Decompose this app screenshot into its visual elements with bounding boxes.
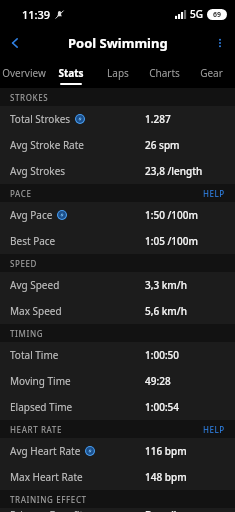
button[interactable]: Best Pace [0, 228, 235, 254]
staticText: Best Pace [10, 234, 56, 248]
staticText: TRAINING EFFECT [10, 494, 87, 505]
button[interactable]: Avg Pace [0, 202, 235, 228]
button[interactable]: Avg Speed [0, 272, 235, 298]
button[interactable]: Moving Time [0, 368, 235, 394]
staticText: Overview [2, 66, 46, 80]
staticText: Pool Swimming [68, 34, 168, 52]
button[interactable]: HELP [193, 420, 235, 438]
button[interactable]: Info [75, 114, 85, 124]
staticText: 1:00:50 [145, 348, 180, 362]
button[interactable]: Primary Benefit [0, 508, 235, 512]
staticText: Avg Heart Rate [10, 444, 81, 458]
staticText: Primary Benefit [10, 508, 84, 512]
staticText: Gear [200, 66, 223, 80]
staticText: 1:05 /100m [145, 234, 198, 248]
button[interactable]: More options [205, 28, 235, 58]
staticText: PACE [10, 188, 32, 199]
staticText: 3,3 km/h [145, 278, 187, 292]
staticText: Avg Stroke Rate [10, 138, 84, 152]
button[interactable]: Total Time [0, 342, 235, 368]
button[interactable]: Back [0, 28, 30, 58]
button[interactable]: Elapsed Time [0, 394, 235, 420]
staticText: 1:00:54 [145, 400, 180, 414]
staticText: 5,6 km/h [145, 304, 187, 318]
button[interactable]: Total Strokes [0, 106, 235, 132]
staticText: Max Speed [10, 304, 62, 318]
staticText: STROKES [10, 92, 49, 103]
button[interactable]: Max Speed [0, 298, 235, 324]
button[interactable]: Info [85, 446, 95, 456]
staticText: 148 bpm [145, 470, 187, 484]
staticText: 1:50 /100m [145, 208, 198, 222]
staticText: 26 spm [145, 138, 180, 152]
staticText: 23,8 /length [145, 164, 203, 178]
staticText: Avg Strokes [10, 164, 66, 178]
button[interactable]: Avg Heart Rate [0, 438, 235, 464]
staticText: 49:28 [145, 374, 171, 388]
staticText: 116 bpm [145, 444, 187, 458]
staticText: TIMING [10, 328, 44, 339]
button[interactable]: Info [57, 210, 67, 220]
staticText: 1.287 [145, 112, 171, 126]
staticText: Base (Low [145, 508, 193, 512]
button[interactable]: HELP [193, 184, 235, 202]
button[interactable]: Laps [94, 58, 141, 88]
staticText: Total Time [10, 348, 59, 362]
staticText: Laps [107, 66, 129, 80]
staticText: Moving Time [10, 374, 71, 388]
button[interactable]: Stats [47, 58, 94, 88]
staticText: HELP [203, 424, 225, 435]
button[interactable]: Max Heart Rate [0, 464, 235, 490]
staticText: Max Heart Rate [10, 470, 83, 484]
button[interactable]: Avg Strokes [0, 158, 235, 184]
staticText: HEART RATE [10, 424, 62, 435]
staticText: Total Strokes [10, 112, 71, 126]
staticText: 11:39 [22, 7, 51, 22]
button[interactable]: Avg Stroke Rate [0, 132, 235, 158]
staticText: HELP [203, 188, 225, 199]
staticText: Elapsed Time [10, 400, 73, 414]
button[interactable]: Overview [0, 58, 47, 88]
staticText: SPEED [10, 258, 38, 269]
staticText: Charts [149, 66, 180, 80]
staticText: Avg Speed [10, 278, 60, 292]
button[interactable]: Gear [188, 58, 235, 88]
staticText: Stats [58, 66, 84, 80]
staticText: Avg Pace [10, 208, 53, 222]
button[interactable]: Charts [141, 58, 188, 88]
staticText: 5G [190, 7, 203, 21]
staticText: 69 [213, 10, 222, 20]
